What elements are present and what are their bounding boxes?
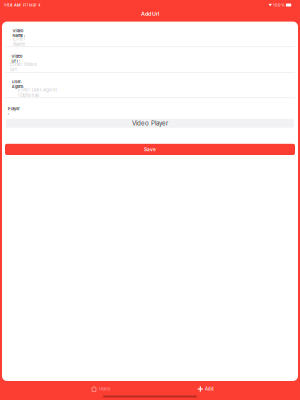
button[interactable]: Add [195, 384, 217, 394]
staticText: User-Agent: [12, 79, 23, 89]
staticText: Enter Video Url [10, 62, 37, 72]
staticText: Video Player [132, 120, 168, 127]
staticText: Add [205, 386, 214, 391]
staticText: Save [144, 146, 156, 152]
button[interactable]: Video Player [2, 119, 298, 128]
staticText: Video Url : [11, 54, 22, 63]
staticText: Add Url [141, 11, 159, 17]
staticText: Enter Name [13, 36, 26, 47]
staticText: 1:58 AM [4, 3, 21, 7]
staticText: Video Name : [12, 28, 25, 38]
button[interactable]: Home [88, 384, 113, 394]
button[interactable]: Save [2, 144, 298, 155]
staticText: 100% [273, 3, 285, 7]
staticText: Fri Mar 4 [21, 3, 41, 7]
staticText: Home [99, 386, 110, 391]
staticText: Enter User-Agent (Optional) [18, 87, 56, 98]
staticText: Player : [8, 106, 20, 116]
